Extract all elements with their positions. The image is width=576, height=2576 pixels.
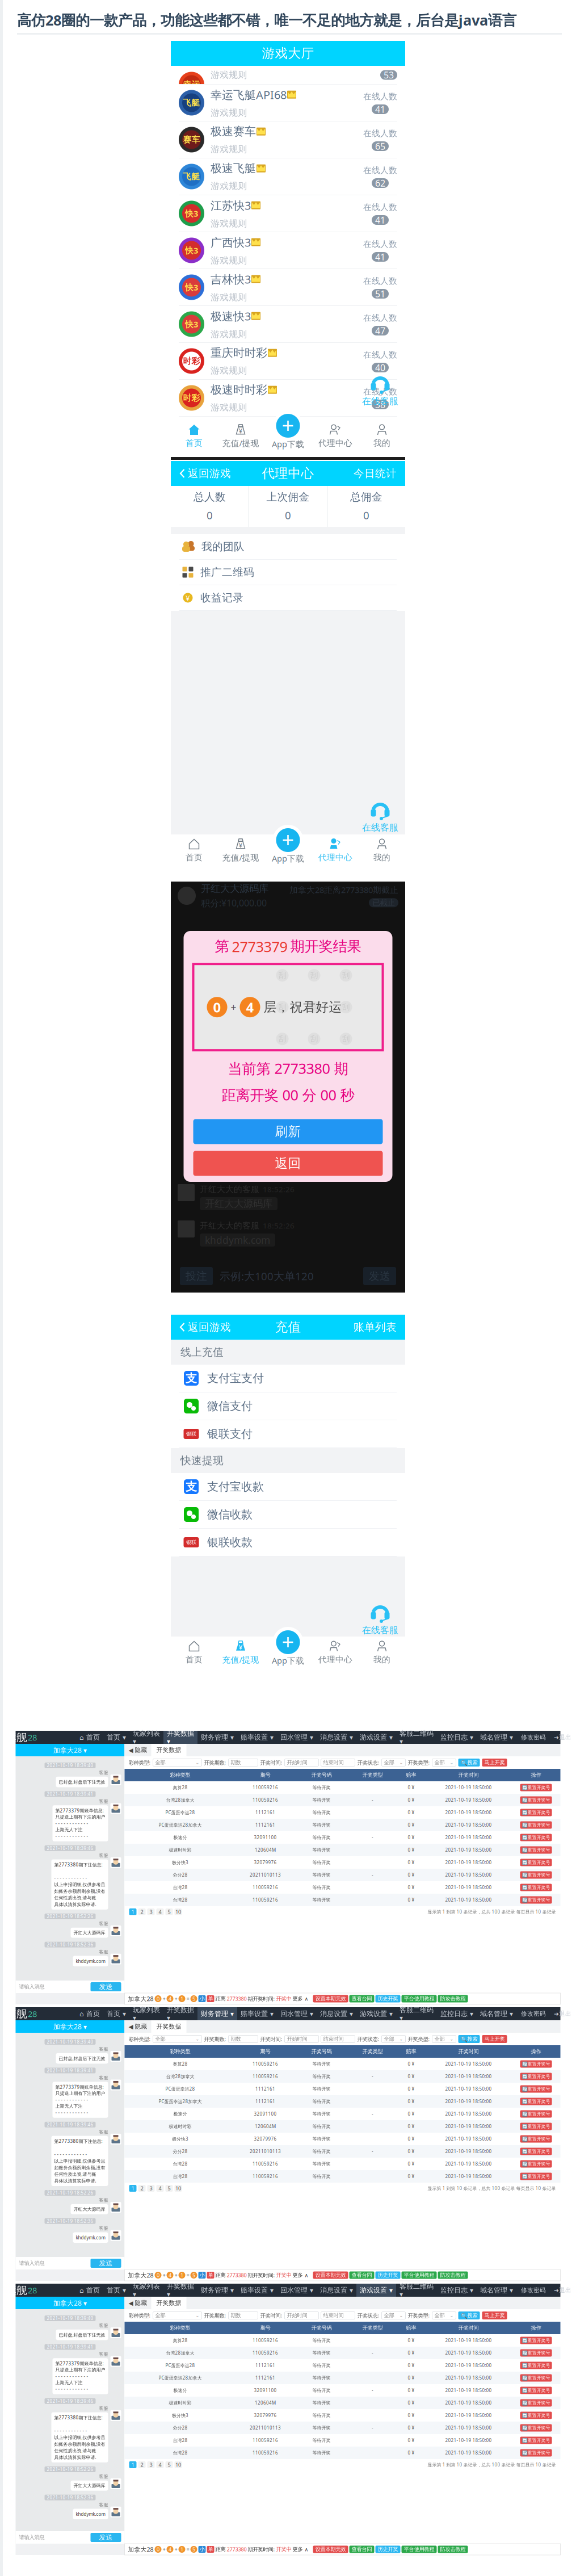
button[interactable]: 代理中心	[312, 1637, 359, 1668]
button[interactable]: 快3	[171, 269, 405, 306]
button[interactable]: 我的团队	[171, 534, 405, 560]
button[interactable]: 🔄重置开奖号	[520, 2160, 552, 2168]
button[interactable]: 马上开奖	[482, 2035, 507, 2043]
button[interactable]: 🔄重置开奖号	[520, 2148, 552, 2155]
button[interactable]: 🔄重置开奖号	[520, 2337, 552, 2344]
button[interactable]: 游戏设置 ▾	[356, 1731, 396, 1744]
button[interactable]: 消息设置 ▾	[317, 1731, 356, 1744]
button[interactable]: 返回游戏	[171, 461, 238, 486]
button[interactable]: 🔄重置开奖号	[520, 1784, 552, 1791]
button[interactable]: 财务管理 ▾	[197, 2284, 237, 2297]
button[interactable]: 消息设置 ▾	[317, 2284, 356, 2297]
button[interactable]: 马上开奖	[482, 1759, 507, 1767]
button[interactable]: 客服二维码 ▾	[396, 2007, 437, 2020]
button[interactable]: 返回游戏	[171, 1315, 238, 1340]
button[interactable]: App下载	[273, 825, 303, 855]
button[interactable]: 赔率设置 ▾	[237, 1731, 277, 1744]
button[interactable]: 账单列表	[338, 1315, 405, 1340]
button[interactable]: 我的	[359, 1637, 405, 1668]
button[interactable]: ¥	[217, 834, 264, 866]
button[interactable]: 发送	[91, 2259, 121, 2268]
button[interactable]: 我的	[359, 834, 405, 866]
button[interactable]: 游戏设置 ▾	[356, 2284, 396, 2297]
button[interactable]: 🔄重置开奖号	[520, 2085, 552, 2093]
button[interactable]: 时彩	[171, 380, 405, 417]
button[interactable]: ¥	[171, 585, 405, 611]
button[interactable]: 赔率设置 ▾	[237, 2007, 277, 2020]
button[interactable]: 微信支付	[171, 1392, 405, 1420]
button[interactable]: 今日统计	[338, 461, 405, 486]
button[interactable]: 开奖数据 ▾	[163, 2284, 197, 2297]
button[interactable]: 飞艇	[171, 85, 405, 121]
button[interactable]: 财务管理 ▾	[197, 2007, 237, 2020]
button[interactable]: 时彩	[171, 343, 405, 380]
button[interactable]: App下载	[273, 1627, 303, 1658]
button[interactable]: 客服二维码 ▾	[396, 2284, 437, 2297]
button[interactable]: 🔄重置开奖号	[520, 2412, 552, 2419]
button[interactable]: 🔄重置开奖号	[520, 2060, 552, 2068]
button[interactable]: 🔄重置开奖号	[520, 1896, 552, 1904]
button[interactable]: 代理中心	[312, 834, 359, 866]
button[interactable]: 推广二维码	[171, 560, 405, 585]
button[interactable]: 快3	[171, 195, 405, 232]
button[interactable]: 🔍搜索	[458, 2035, 480, 2043]
button[interactable]: 🔍搜索	[458, 2311, 480, 2319]
button[interactable]: 首页	[171, 420, 217, 452]
button[interactable]: ¥	[217, 420, 264, 452]
button[interactable]: 🔄重置开奖号	[520, 2098, 552, 2105]
button[interactable]: 🔄重置开奖号	[520, 2173, 552, 2180]
button[interactable]: 🔄重置开奖号	[520, 2362, 552, 2369]
button[interactable]: 回水管理 ▾	[277, 2284, 317, 2297]
button[interactable]: 客服二维码 ▾	[396, 1731, 437, 1744]
button[interactable]: 域名管理 ▾	[477, 2284, 516, 2297]
button[interactable]: 🔄重置开奖号	[520, 1871, 552, 1879]
button[interactable]: 🔄重置开奖号	[520, 2123, 552, 2130]
button[interactable]: 开奖数据 ▾	[163, 2007, 197, 2020]
button[interactable]: 域名管理 ▾	[477, 2007, 516, 2020]
button[interactable]: 返回	[193, 1151, 383, 1176]
button[interactable]: 🔄重置开奖号	[520, 1834, 552, 1841]
button[interactable]: 🔄重置开奖号	[520, 2449, 552, 2457]
button[interactable]: 消息设置 ▾	[317, 2007, 356, 2020]
button[interactable]: ¥	[217, 1637, 264, 1668]
button[interactable]: 银联	[171, 1529, 405, 1556]
button[interactable]: 🔄重置开奖号	[520, 2437, 552, 2444]
button[interactable]: 玩家列表 ▾	[129, 2284, 163, 2297]
button[interactable]: 首页 ▾	[103, 2007, 129, 2020]
button[interactable]: 🔄重置开奖号	[520, 2374, 552, 2382]
button[interactable]: 在线客服	[362, 1604, 398, 1635]
button[interactable]: 监控日志 ▾	[437, 2284, 477, 2297]
button[interactable]: 微信收款	[171, 1501, 405, 1529]
button[interactable]: 代理中心	[312, 420, 359, 452]
button[interactable]: 支	[171, 1365, 405, 1392]
button[interactable]: 首页 ▾	[103, 2284, 129, 2297]
button[interactable]: 🔄重置开奖号	[520, 2424, 552, 2432]
button[interactable]: 🔄重置开奖号	[520, 1809, 552, 1816]
button[interactable]: 快3	[171, 306, 405, 343]
button[interactable]: 回水管理 ▾	[277, 2007, 317, 2020]
button[interactable]: App下载	[273, 410, 303, 441]
button[interactable]: 🔄重置开奖号	[520, 1796, 552, 1804]
button[interactable]: 赔率设置 ▾	[237, 2284, 277, 2297]
button[interactable]: 首页 ▾	[103, 1731, 129, 1744]
button[interactable]: 🔄重置开奖号	[520, 1859, 552, 1866]
button[interactable]: 飞艇	[171, 158, 405, 195]
button[interactable]: 开奖数据 ▾	[163, 1731, 197, 1744]
button[interactable]: 玩家列表 ▾	[129, 1731, 163, 1744]
button[interactable]: 赛车	[171, 121, 405, 158]
button[interactable]: 监控日志 ▾	[437, 2007, 477, 2020]
button[interactable]: 🔄重置开奖号	[520, 1846, 552, 1854]
button[interactable]: 🔄重置开奖号	[520, 2387, 552, 2394]
button[interactable]: 银联	[171, 1420, 405, 1448]
button[interactable]: 🔄重置开奖号	[520, 2349, 552, 2357]
button[interactable]: 🔄重置开奖号	[520, 2110, 552, 2118]
button[interactable]: 回水管理 ▾	[277, 1731, 317, 1744]
button[interactable]: 🔄重置开奖号	[520, 1821, 552, 1829]
button[interactable]: 马上开奖	[482, 2311, 507, 2319]
button[interactable]: 首页	[171, 1637, 217, 1668]
button[interactable]: 🔄重置开奖号	[520, 1884, 552, 1891]
button[interactable]: 发送	[91, 1982, 121, 1991]
button[interactable]: 财务管理 ▾	[197, 1731, 237, 1744]
button[interactable]: 🔄重置开奖号	[520, 2073, 552, 2080]
button[interactable]: 刷新	[193, 1119, 383, 1144]
